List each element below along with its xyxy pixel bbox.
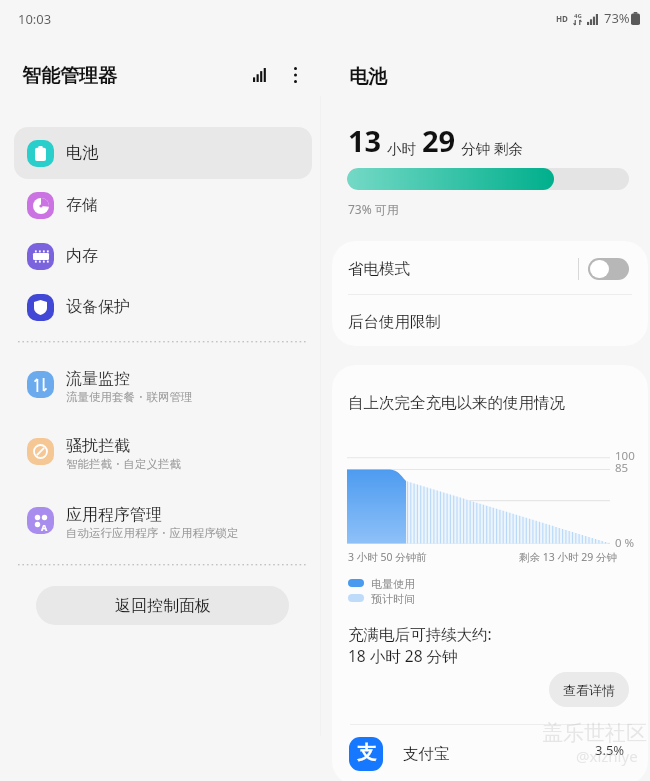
staticText: 支 bbox=[357, 741, 376, 765]
staticText: 后台使用限制 bbox=[348, 312, 441, 332]
button[interactable]: 流量监控 bbox=[14, 352, 312, 412]
staticText: 29 bbox=[422, 121, 456, 160]
button[interactable]: 内存 bbox=[14, 230, 312, 282]
staticText: 电池 bbox=[349, 65, 387, 89]
staticText: 4G bbox=[574, 12, 582, 20]
staticText: 预计时间 bbox=[371, 592, 415, 606]
button[interactable]: 存储 bbox=[14, 179, 312, 231]
staticText: 电池 bbox=[66, 143, 98, 163]
staticText: 智能拦截・自定义拦截 bbox=[66, 457, 181, 471]
staticText: 13 bbox=[348, 121, 382, 160]
staticText: 3.5% bbox=[595, 741, 625, 759]
staticText: 骚扰拦截 bbox=[66, 436, 130, 456]
button[interactable]: More options bbox=[278, 58, 312, 92]
button[interactable]: 电池 bbox=[14, 127, 312, 179]
staticText: 3 小时 50 分钟前 bbox=[348, 550, 427, 564]
button[interactable]: 支 bbox=[332, 726, 648, 781]
staticText: 充满电后可持续大约: bbox=[348, 623, 492, 644]
button[interactable]: 查看详情 bbox=[549, 672, 629, 707]
staticText: HD bbox=[556, 13, 568, 24]
staticText: 分钟 剩余 bbox=[461, 138, 523, 158]
staticText: 设备保护 bbox=[66, 297, 130, 317]
staticText: 自动运行应用程序・应用程序锁定 bbox=[66, 526, 239, 540]
button[interactable]: 设备保护 bbox=[14, 281, 312, 333]
staticText: 流量使用套餐・联网管理 bbox=[66, 390, 193, 404]
staticText: 查看详情 bbox=[563, 682, 615, 698]
staticText: 剩余 13 小时 29 分钟 bbox=[519, 550, 617, 564]
button[interactable]: 后台使用限制 bbox=[332, 298, 648, 346]
staticText: A bbox=[41, 521, 48, 533]
staticText: 85 bbox=[615, 460, 629, 476]
staticText: 电量使用 bbox=[371, 577, 415, 591]
staticText: 流量监控 bbox=[66, 369, 130, 389]
button[interactable]: 骚扰拦截 bbox=[14, 419, 312, 479]
staticText: 返回控制面板 bbox=[115, 596, 211, 616]
staticText: 应用程序管理 bbox=[66, 505, 162, 525]
button[interactable]: Power saving toggle bbox=[588, 258, 629, 280]
staticText: 73% bbox=[604, 9, 630, 27]
button[interactable]: Usage chart bbox=[243, 58, 277, 92]
staticText: 100 bbox=[615, 448, 635, 464]
staticText: 小时 bbox=[387, 140, 416, 158]
staticText: 省电模式 bbox=[348, 259, 410, 279]
staticText: 0 % bbox=[615, 535, 635, 551]
staticText: 内存 bbox=[66, 246, 98, 266]
button[interactable]: 省电模式 bbox=[332, 241, 648, 296]
staticText: 盖乐世社区 bbox=[542, 720, 647, 746]
staticText: 存储 bbox=[66, 195, 98, 215]
staticText: 73% 可用 bbox=[348, 201, 399, 217]
staticText: 支付宝 bbox=[403, 744, 450, 764]
staticText: 自上次完全充电以来的使用情况 bbox=[348, 393, 565, 413]
button[interactable]: A bbox=[14, 488, 312, 548]
staticText: 智能管理器 bbox=[22, 64, 117, 88]
staticText: 10:03 bbox=[18, 10, 52, 28]
staticText: 18 小时 28 分钟 bbox=[348, 645, 458, 666]
staticText: @xizhiye bbox=[576, 746, 638, 766]
button[interactable]: 返回控制面板 bbox=[36, 586, 289, 625]
